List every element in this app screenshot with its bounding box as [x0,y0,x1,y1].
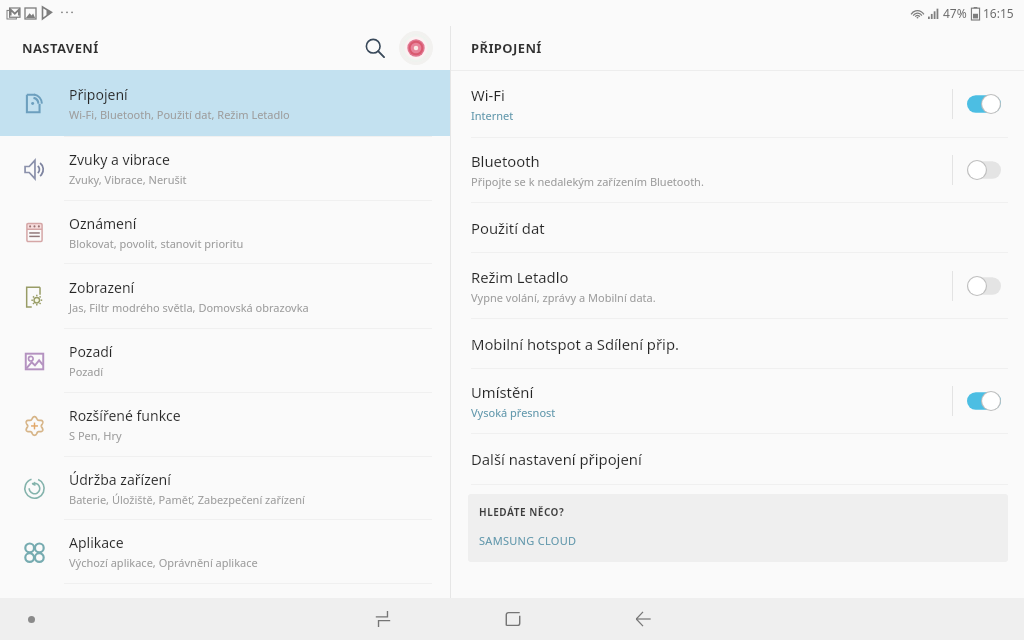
button[interactable]: Zapnuto [967,391,1001,411]
button[interactable]: Účet [399,31,433,65]
button[interactable]: Oznámení [0,201,450,263]
staticText: PŘIPOJENÍ [471,39,542,57]
staticText: Připojení [69,85,128,104]
staticText: Zvuky, Vibrace, Nerušit [69,172,187,187]
staticText: Pozadí [69,342,113,361]
staticText: Údržba zařízení [69,470,171,489]
staticText: Další nastavení připojení [471,449,642,469]
staticText: Výchozí aplikace, Oprávnění aplikace [69,555,258,570]
staticText: SAMSUNG CLOUD [479,533,577,548]
staticText: Baterie, Úložiště, Paměť, Zabezpečení za… [69,492,305,507]
staticText: Režim Letadlo [471,267,569,287]
staticText: S Pen, Hry [69,428,122,443]
button[interactable]: Poslední aplikace [335,598,431,640]
button[interactable]: Použití dat [451,203,1024,252]
staticText: Rozšířené funkce [69,406,181,425]
button[interactable]: Bluetooth [451,138,1024,202]
staticText: Zvuky a vibrace [69,150,170,169]
staticText: Pozadí [69,364,104,379]
staticText: NASTAVENÍ [22,39,99,57]
staticText: Bluetooth [471,151,540,171]
button[interactable]: Další nastavení připojení [451,434,1024,484]
button[interactable]: Údržba zařízení [0,457,450,519]
staticText: Blokovat, povolit, stanovit prioritu [69,236,244,251]
staticText: Wi-Fi, Bluetooth, Použití dat, Režim Let… [69,107,290,122]
button[interactable]: HLEDÁTE NĚCO? [468,494,1008,562]
button[interactable]: Umístění [451,369,1024,433]
button[interactable]: Zvuky a vibrace [0,137,450,200]
button[interactable]: Wi-Fi [451,71,1024,137]
staticText: Použití dat [471,218,545,238]
staticText: Vysoká přesnost [471,405,556,420]
button[interactable]: Vypnuto [967,276,1001,296]
button[interactable]: Hledat [357,30,393,66]
staticText: Oznámení [69,214,137,233]
button[interactable]: Domů [465,598,561,640]
staticText: 16:15 [983,5,1014,21]
button[interactable]: Připojení [0,70,450,136]
button[interactable]: Zobrazení [0,264,450,328]
staticText: Aplikace [69,533,124,552]
button[interactable]: Zapnuto [967,94,1001,114]
staticText: 47% [943,5,967,21]
button[interactable]: Aplikace [0,520,450,583]
staticText: Mobilní hotspot a Sdílení přip. [471,334,679,354]
staticText: Připojte se k nedalekým zařízením Blueto… [471,174,704,189]
button[interactable]: Vypnuto [967,160,1001,180]
button[interactable]: Mobilní hotspot a Sdílení přip. [451,319,1024,368]
button[interactable]: Pozadí [0,329,450,392]
staticText: Wi-Fi [471,85,505,105]
button[interactable]: Režim Letadlo [451,253,1024,318]
staticText: HLEDÁTE NĚCO? [479,505,565,519]
button[interactable]: Rozšířené funkce [0,393,450,456]
staticText: Jas, Filtr modrého světla, Domovská obra… [69,300,309,315]
staticText: Umístění [471,382,534,402]
staticText: Zobrazení [69,278,135,297]
staticText: Internet [471,108,514,123]
button[interactable]: Zpět [595,598,691,640]
staticText: Vypne volání, zprávy a Mobilní data. [471,290,656,305]
